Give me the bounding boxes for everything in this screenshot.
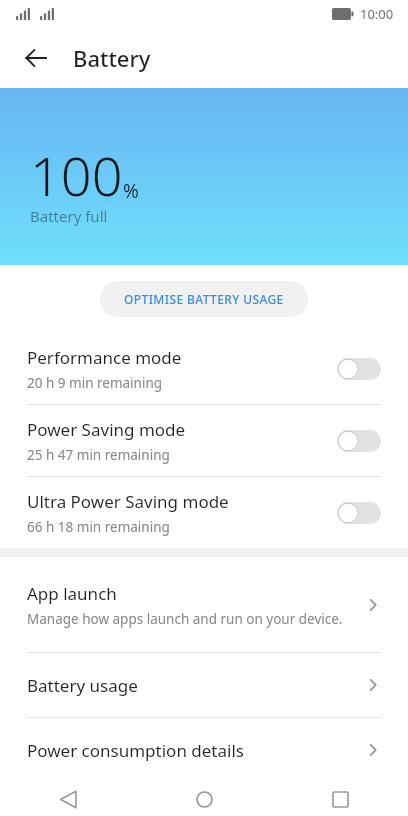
staticText: %: [123, 178, 139, 204]
staticText: Manage how apps launch and run on your d…: [27, 610, 343, 628]
staticText: Performance mode: [27, 346, 182, 369]
button[interactable]: Battery usage: [0, 653, 408, 717]
button[interactable]: Toggle: [337, 358, 381, 380]
button[interactable]: Toggle: [337, 430, 381, 452]
staticText: 25 h 47 min remaining: [27, 446, 170, 464]
button[interactable]: Home: [136, 782, 272, 816]
button[interactable]: Power consumption details: [0, 718, 408, 782]
staticText: 100: [30, 138, 123, 212]
staticText: Battery usage: [27, 674, 138, 697]
staticText: Ultra Power Saving mode: [27, 490, 229, 513]
button[interactable]: Back: [0, 782, 136, 816]
button[interactable]: Ultra Power Saving mode: [0, 477, 408, 548]
button[interactable]: Power Saving mode: [0, 405, 408, 476]
button[interactable]: Performance mode: [0, 333, 408, 404]
button[interactable]: OPTIMISE BATTERY USAGE: [100, 281, 308, 317]
button[interactable]: Back: [14, 36, 58, 80]
button[interactable]: Recent apps: [272, 782, 408, 816]
button[interactable]: App launch: [0, 557, 408, 652]
staticText: Battery: [73, 43, 151, 73]
staticText: OPTIMISE BATTERY USAGE: [124, 291, 284, 307]
staticText: Battery full: [30, 206, 108, 226]
staticText: 10:00: [360, 5, 394, 23]
staticText: Power Saving mode: [27, 418, 186, 441]
staticText: 66 h 18 min remaining: [27, 518, 170, 536]
staticText: 20 h 9 min remaining: [27, 374, 163, 392]
staticText: Power consumption details: [27, 739, 244, 762]
staticText: App launch: [27, 582, 117, 605]
button[interactable]: Toggle: [337, 502, 381, 524]
